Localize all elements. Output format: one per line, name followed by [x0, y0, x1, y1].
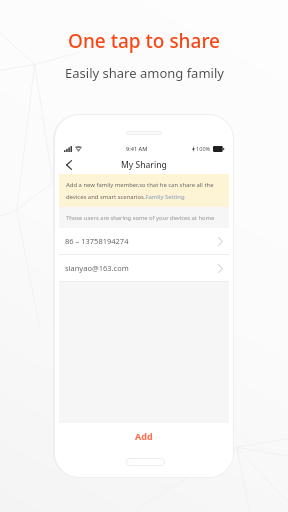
staticText: Add a new family member,so that he can s…	[66, 181, 222, 201]
button[interactable]: Back	[62, 158, 76, 172]
staticText: 9:41 AM	[126, 145, 148, 153]
staticText: My Sharing	[121, 159, 167, 171]
button[interactable]: Add	[59, 423, 229, 449]
staticText: Those users are sharing some of your dev…	[66, 214, 215, 222]
button[interactable]: 86 – 13758194274	[59, 228, 229, 254]
staticText: 100%	[196, 145, 211, 153]
staticText: Easily share among family	[65, 64, 224, 82]
button[interactable]: slanyao@163.com	[59, 255, 229, 281]
staticText: One tap to share	[68, 28, 220, 54]
staticText: slanyao@163.com	[65, 263, 129, 273]
staticText: 86 – 13758194274	[65, 236, 129, 246]
staticText: Add	[135, 430, 153, 442]
